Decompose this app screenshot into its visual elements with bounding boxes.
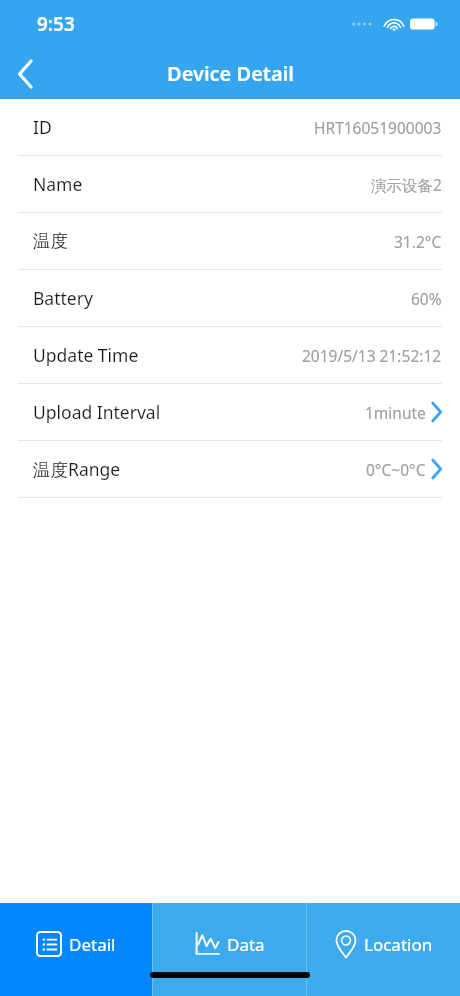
staticText: 9:53 <box>37 11 75 37</box>
staticText: 0°C~0°C <box>366 459 426 480</box>
button[interactable]: 温度Range <box>0 441 460 497</box>
staticText: Data <box>227 933 265 956</box>
staticText: Name <box>33 172 83 196</box>
staticText: 演示设备2 <box>371 174 442 195</box>
staticText: Upload Interval <box>33 400 161 424</box>
staticText: ID <box>33 115 52 139</box>
button[interactable]: Upload Interval <box>0 384 460 440</box>
staticText: Update Time <box>33 343 139 367</box>
staticText: 温度 <box>33 230 68 252</box>
button[interactable]: Back <box>0 48 52 99</box>
button[interactable]: Location <box>307 903 460 996</box>
staticText: 60% <box>411 288 442 309</box>
staticText: 2019/5/13 21:52:12 <box>302 345 442 366</box>
staticText: Detail <box>69 933 116 956</box>
staticText: Location <box>364 933 433 956</box>
staticText: 1minute <box>365 402 426 423</box>
staticText: 温度Range <box>33 457 121 481</box>
button[interactable]: Data <box>153 903 306 996</box>
staticText: 31.2°C <box>394 231 442 252</box>
staticText: Battery <box>33 286 93 310</box>
staticText: Device Detail <box>167 60 294 87</box>
staticText: HRT16051900003 <box>314 117 442 138</box>
button[interactable]: Detail <box>0 903 152 996</box>
